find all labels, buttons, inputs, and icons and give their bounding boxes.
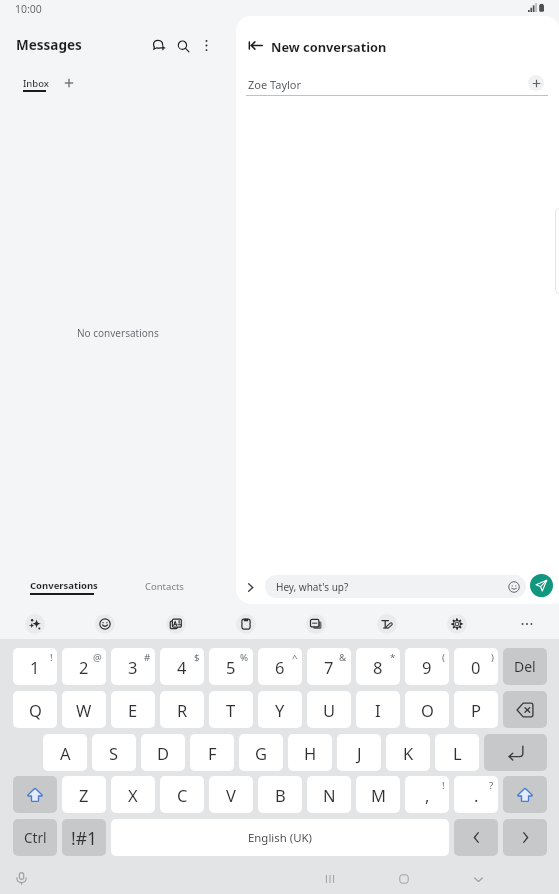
button[interactable]: X: [111, 776, 155, 813]
button[interactable]: G: [239, 734, 283, 771]
button[interactable]: Voice input: [9, 866, 33, 890]
button[interactable]: sticker: [161, 610, 191, 638]
button[interactable]: H: [288, 734, 332, 771]
button[interactable]: J: [337, 734, 381, 771]
button[interactable]: D: [141, 734, 185, 771]
staticText: New conversation: [271, 38, 387, 55]
button[interactable]: 3: [111, 648, 155, 685]
staticText: .: [474, 784, 479, 806]
button[interactable]: C: [160, 776, 204, 813]
staticText: L: [453, 742, 462, 764]
staticText: W: [76, 699, 92, 721]
button[interactable]: 2: [62, 648, 106, 685]
button[interactable]: 6: [258, 648, 302, 685]
button[interactable]: T: [209, 691, 253, 728]
staticText: Zoe Taylor: [248, 77, 302, 92]
button[interactable]: translate2: [301, 610, 331, 638]
button[interactable]: Inbox: [17, 72, 47, 96]
button[interactable]: Hide keyboard: [466, 867, 490, 891]
button[interactable]: F: [190, 734, 234, 771]
button[interactable]: hand: [372, 610, 402, 638]
button[interactable]: M: [356, 776, 400, 813]
staticText: U: [323, 699, 336, 721]
button[interactable]: 7: [307, 648, 351, 685]
button[interactable]: S: [92, 734, 136, 771]
button[interactable]: Conversations: [22, 573, 102, 600]
staticText: 10:00: [15, 2, 42, 16]
button[interactable]: emoji: [90, 610, 120, 638]
button[interactable]: Del: [503, 648, 547, 685]
staticText: 8: [373, 656, 383, 678]
button[interactable]: U: [307, 691, 351, 728]
button[interactable]: .: [454, 776, 498, 813]
button[interactable]: [503, 776, 547, 813]
staticText: M: [371, 784, 386, 806]
button[interactable]: Y: [258, 691, 302, 728]
staticText: (: [442, 651, 445, 664]
button[interactable]: 1: [13, 648, 57, 685]
button[interactable]: E: [111, 691, 155, 728]
staticText: 9: [422, 656, 432, 678]
button[interactable]: Home: [392, 867, 416, 891]
staticText: J: [357, 742, 362, 764]
button[interactable]: 0: [454, 648, 498, 685]
button[interactable]: Q: [13, 691, 57, 728]
button[interactable]: 9: [405, 648, 449, 685]
button[interactable]: Expand toolbar: [238, 575, 262, 599]
button[interactable]: [503, 819, 547, 856]
staticText: O: [421, 699, 434, 721]
staticText: !: [442, 779, 445, 792]
staticText: Hey, what's up?: [276, 580, 349, 594]
button[interactable]: W: [62, 691, 106, 728]
button[interactable]: [454, 819, 498, 856]
staticText: P: [471, 699, 481, 721]
staticText: 2: [79, 656, 89, 678]
button[interactable]: Z: [62, 776, 106, 813]
button[interactable]: More options: [194, 33, 218, 57]
staticText: Inbox: [23, 77, 49, 90]
button[interactable]: Add recipient: [528, 75, 544, 91]
staticText: Ctrl: [24, 828, 47, 847]
button[interactable]: Contacts: [124, 573, 204, 599]
button[interactable]: I: [356, 691, 400, 728]
staticText: R: [177, 699, 188, 721]
button[interactable]: Back: [242, 32, 268, 58]
button[interactable]: K: [386, 734, 430, 771]
button[interactable]: 5: [209, 648, 253, 685]
button[interactable]: English (UK): [111, 819, 449, 856]
button[interactable]: V: [209, 776, 253, 813]
staticText: S: [109, 742, 119, 764]
staticText: T: [226, 699, 236, 721]
button[interactable]: New chat: [144, 29, 172, 57]
staticText: Contacts: [145, 580, 184, 593]
button[interactable]: gear: [442, 610, 472, 638]
button[interactable]: Recents: [318, 867, 342, 891]
button[interactable]: 8: [356, 648, 400, 685]
button[interactable]: N: [307, 776, 351, 813]
button[interactable]: 4: [160, 648, 204, 685]
button[interactable]: Add label: [58, 72, 80, 94]
staticText: K: [403, 742, 414, 764]
button[interactable]: Emoji: [508, 581, 520, 593]
button[interactable]: [484, 734, 547, 771]
button[interactable]: A: [43, 734, 87, 771]
button[interactable]: P: [454, 691, 498, 728]
staticText: X: [128, 784, 138, 806]
button[interactable]: sparkle: [20, 610, 50, 638]
button[interactable]: B: [258, 776, 302, 813]
button[interactable]: ,: [405, 776, 449, 813]
button[interactable]: Send: [530, 574, 553, 597]
button[interactable]: R: [160, 691, 204, 728]
button[interactable]: L: [435, 734, 479, 771]
button[interactable]: [503, 691, 547, 728]
button[interactable]: O: [405, 691, 449, 728]
button[interactable]: more: [512, 610, 542, 638]
button[interactable]: Search: [170, 33, 196, 59]
button[interactable]: Hey, what's up?: [265, 575, 526, 598]
staticText: English (UK): [248, 830, 312, 846]
staticText: V: [226, 784, 236, 806]
button[interactable]: clip: [231, 610, 261, 638]
button[interactable]: Ctrl: [13, 819, 57, 856]
button[interactable]: [13, 776, 57, 813]
button[interactable]: !#1: [62, 819, 106, 856]
